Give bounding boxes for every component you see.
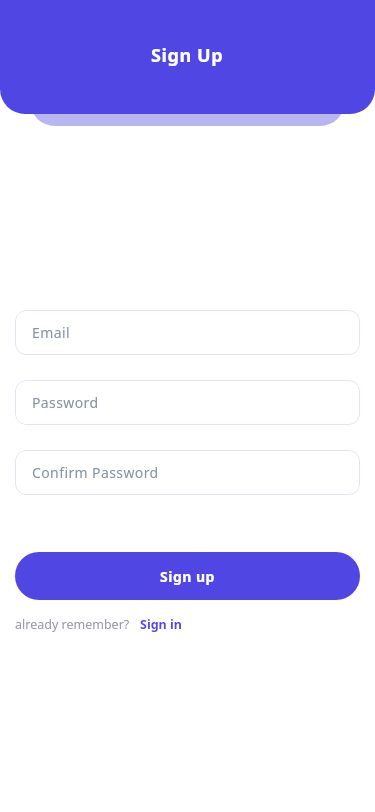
staticText: Sign in [140, 616, 182, 633]
staticText: Password [32, 393, 99, 412]
button[interactable]: Confirm Password [15, 450, 360, 495]
staticText: Sign up [160, 567, 215, 586]
button[interactable]: Sign up [15, 552, 360, 600]
button[interactable]: Email [15, 310, 360, 355]
button[interactable]: Password [15, 380, 360, 425]
staticText: Email [32, 323, 70, 342]
staticText: Sign Up [151, 43, 224, 68]
staticText: Confirm Password [32, 463, 159, 482]
staticText: already remember? [15, 616, 130, 633]
button[interactable]: Sign in [140, 616, 182, 633]
